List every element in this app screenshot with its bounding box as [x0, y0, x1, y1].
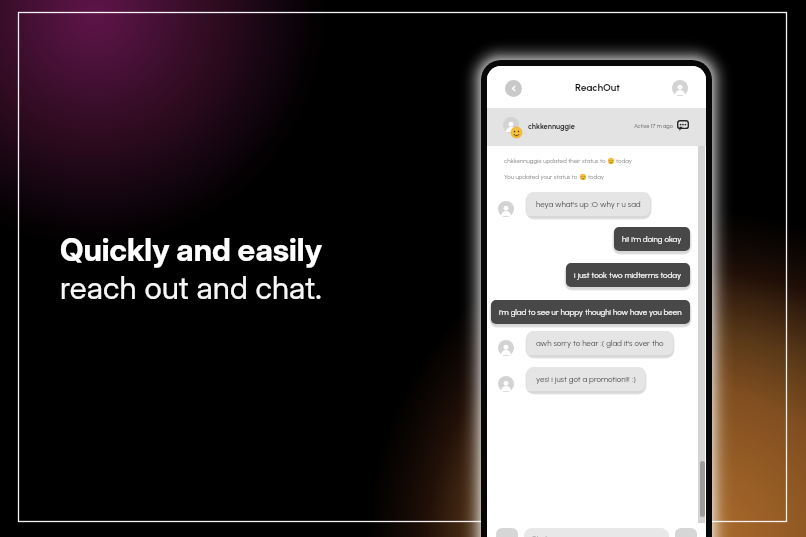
staticText: Quickly and easily	[60, 231, 323, 269]
staticText: i just took two midterms today	[574, 270, 682, 280]
staticText: today	[616, 157, 633, 165]
staticText: reach out and chat.	[60, 269, 322, 307]
staticText: chkkennuggie updated their status to	[504, 157, 606, 165]
button[interactable]: Messages	[677, 120, 689, 131]
button[interactable]: heya what's up :O why r u sad	[527, 192, 650, 216]
button[interactable]: i'm glad to see ur happy though! how hav…	[491, 300, 690, 324]
button[interactable]: awh sorry to hear :( glad it's over tho	[527, 331, 673, 355]
staticText: ReachOut	[575, 81, 620, 93]
staticText: awh sorry to hear :( glad it's over tho	[536, 338, 664, 348]
staticText: today	[588, 173, 605, 181]
button[interactable]: Send	[675, 528, 697, 537]
staticText: i'm glad to see ur happy though! how hav…	[499, 307, 682, 317]
staticText: yes! i just got a promotion!!! :)	[536, 374, 636, 384]
staticText: heya what's up :O why r u sad	[536, 199, 641, 209]
staticText: Start a message	[532, 534, 583, 537]
button[interactable]: i just took two midterms today	[566, 263, 690, 287]
button[interactable]: Profile	[672, 80, 688, 96]
button[interactable]: Start a message	[524, 528, 669, 537]
staticText: Active 17 m ago	[634, 123, 673, 130]
button[interactable]: hi! i'm doing okay	[614, 227, 690, 251]
button[interactable]: Add attachment	[496, 528, 518, 537]
staticText: chkkennuggie	[528, 122, 576, 131]
button[interactable]: Back	[505, 80, 522, 97]
button[interactable]: yes! i just got a promotion!!! :)	[527, 367, 645, 391]
staticText: hi! i'm doing okay	[622, 234, 682, 244]
staticText: You updated your status to	[504, 173, 578, 181]
